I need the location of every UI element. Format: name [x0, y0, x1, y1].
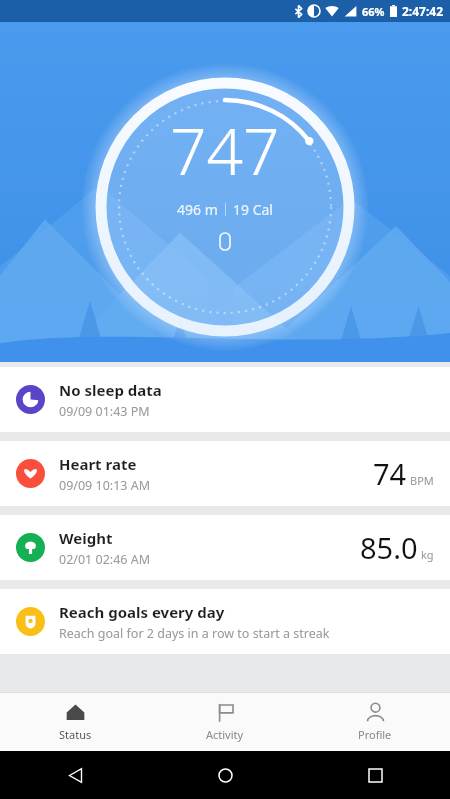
button[interactable]: Status [0, 693, 150, 751]
staticText: Heart rate [59, 454, 137, 474]
staticText: Weight [59, 528, 113, 548]
button[interactable]: No sleep data [0, 367, 450, 432]
button[interactable]: Weight [0, 515, 450, 580]
button[interactable]: Reach goals every day [0, 589, 450, 654]
staticText: 74 [373, 454, 407, 493]
staticText: 09/09 01:43 PM [59, 403, 150, 420]
button[interactable]: Back [0, 751, 150, 799]
staticText: 2:47:42 [402, 3, 444, 19]
staticText: 02/01 02:46 AM [59, 551, 151, 568]
staticText: 747 [170, 107, 280, 194]
button[interactable]: Recent apps [300, 751, 450, 799]
button[interactable]: Profile [300, 693, 450, 751]
staticText: 19 Cal [233, 200, 273, 219]
button[interactable]: Home [150, 751, 300, 799]
staticText: 496 m [177, 200, 218, 219]
staticText: No sleep data [59, 380, 162, 400]
staticText: BPM [410, 473, 434, 488]
staticText: Status [59, 727, 92, 742]
button[interactable]: Activity [150, 693, 300, 751]
staticText: kg [421, 547, 434, 562]
staticText: Reach goals every day [59, 602, 225, 622]
staticText: 85.0 [360, 528, 418, 567]
staticText: 09/09 10:13 AM [59, 477, 151, 494]
staticText: Reach goal for 2 days in a row to start … [59, 625, 330, 642]
button[interactable]: Heart rate [0, 441, 450, 506]
staticText: Activity [206, 727, 244, 742]
staticText: Profile [358, 727, 392, 742]
staticText: 66% [362, 4, 385, 19]
